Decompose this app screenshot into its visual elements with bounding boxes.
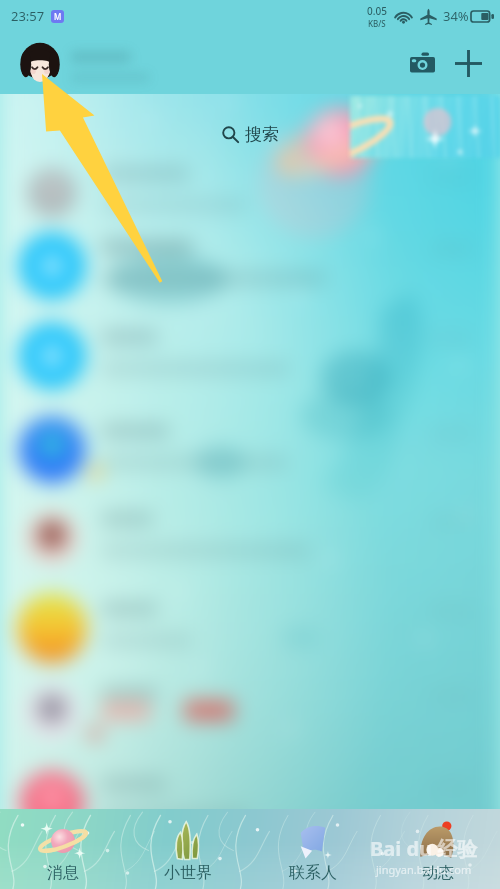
button[interactable]: 联系人 <box>250 809 375 889</box>
button[interactable]: 搜索 <box>0 94 500 174</box>
staticText: 消息 <box>47 863 79 883</box>
staticText: 动态 <box>422 863 454 883</box>
staticText: 0.05 <box>367 4 387 18</box>
button[interactable]: Camera <box>404 45 440 81</box>
staticText: 搜索 <box>245 124 279 145</box>
staticText: M <box>54 11 62 22</box>
staticText: Bai du 经验 <box>370 835 478 862</box>
button[interactable]: 小世界 <box>125 809 250 889</box>
staticText: 23:57 <box>11 7 45 25</box>
button[interactable]: Profile <box>19 42 61 84</box>
button[interactable]: 动态 <box>375 809 500 889</box>
staticText: 联系人 <box>289 863 337 883</box>
staticText: 34% <box>443 7 469 25</box>
button[interactable] <box>67 43 163 83</box>
staticText: 小世界 <box>164 863 212 883</box>
staticText: jingyan.baidu.com <box>376 862 472 877</box>
button[interactable]: 消息 <box>0 809 125 889</box>
button[interactable]: Add <box>450 45 486 81</box>
staticText: KB/S <box>368 18 386 29</box>
